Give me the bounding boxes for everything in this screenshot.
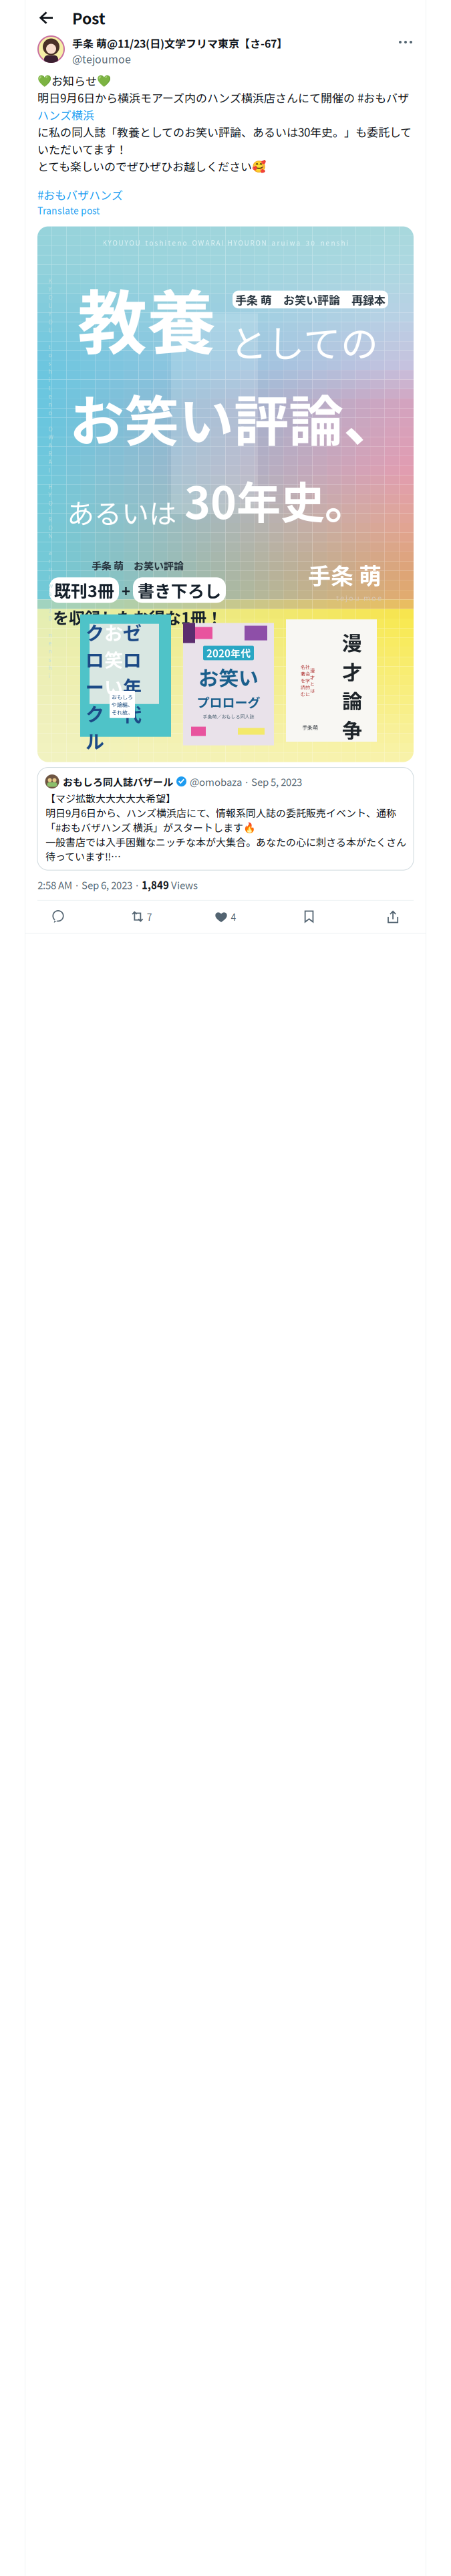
staticText: Post: [72, 7, 106, 29]
staticText: おもしろ同人誌バザール: [63, 774, 173, 789]
staticText: 【マジ拡散大大大大大希望】: [45, 791, 176, 805]
staticText: 名 著 を 読 む: [301, 664, 305, 697]
staticText: 明日9月6日から横浜モアーズ内のハンズ横浜店さんにて開催の #おもバザ: [37, 89, 409, 106]
staticText: 手条萌／おもしろ同人誌: [203, 713, 254, 720]
button[interactable]: Share: [372, 901, 414, 932]
staticText: 手条 萌 お笑い評論: [92, 558, 184, 573]
staticText: に私の同人誌「教養としてのお笑い評論、あるいは30年史。」も委託して: [37, 124, 412, 140]
staticText: 手条 萌: [308, 558, 382, 591]
staticText: としての: [230, 314, 378, 368]
staticText: 手条萌: [302, 723, 318, 731]
staticText: K Y O U Y O U t o s h i t e n o O W A R …: [48, 277, 53, 680]
staticText: 「#おもバザハンズ 横浜」がスタートします🔥: [45, 820, 256, 834]
staticText: ハンズ横浜: [37, 106, 94, 123]
staticText: おもしろ や論編、 それ故。: [112, 693, 133, 716]
staticText: 1,849: [142, 878, 169, 892]
staticText: 手条 萌@11/23(日)文学フリマ東京【さ-67】: [72, 35, 287, 51]
staticText: 漫 才 論 争: [342, 627, 362, 744]
staticText: 一般書店では入手困難なニッチな本が大集合。あなたの心に刺さる本がたくさん: [45, 834, 406, 849]
staticText: @tejoumoe: [72, 51, 131, 66]
staticText: 30年史。: [184, 468, 369, 532]
staticText: Translate post: [37, 203, 100, 217]
staticText: お笑い: [198, 662, 259, 691]
staticText: +: [122, 579, 130, 601]
staticText: 明日9月6日から、ハンズ横浜店にて、情報系同人誌の委託販売イベント、通称: [45, 805, 396, 820]
button[interactable]: Translate post: [37, 203, 100, 217]
staticText: 社 会 学 的 に: [305, 664, 310, 697]
staticText: Views: [169, 878, 198, 892]
staticText: 漫 才 と は: [310, 667, 315, 694]
staticText: ク ロ ー ク ル: [86, 618, 104, 754]
staticText: K Y O U Y O U t o s h i t e n o O W A R …: [103, 238, 348, 248]
staticText: あるいは: [67, 492, 176, 532]
staticText: 既刊3冊: [54, 578, 114, 602]
staticText: ゼ ロ 年 代: [123, 618, 142, 727]
staticText: 💚お知らせ💚: [37, 72, 111, 89]
staticText: とても楽しいのでぜひぜひお越しください🥰: [37, 158, 266, 174]
button[interactable]: Back: [35, 6, 57, 29]
button[interactable]: More options: [398, 35, 414, 49]
button[interactable]: Bookmark: [289, 901, 330, 932]
staticText: t e j o u m o e: [336, 592, 382, 603]
staticText: 4: [231, 910, 236, 924]
staticText: 2:58 AM · Sep 6, 2023 ·: [37, 878, 142, 892]
button[interactable]: Like: [205, 901, 246, 932]
button[interactable]: おもしろ同人誌バザール: [37, 767, 414, 870]
staticText: 2020年代: [206, 646, 251, 660]
staticText: 待っています‼…: [45, 849, 121, 863]
staticText: 手条 萌 お笑い評論 再録本: [235, 291, 386, 308]
staticText: #おもバザハンズ: [37, 186, 123, 203]
staticText: @omobaza · Sep 5, 2023: [190, 774, 302, 789]
staticText: 7: [147, 910, 152, 924]
staticText: いただいてます！: [37, 141, 127, 157]
staticText: を収録したお得な1冊！: [53, 606, 222, 629]
staticText: お 笑 い: [104, 618, 123, 700]
staticText: 教養: [78, 268, 216, 368]
staticText: 書き下ろし: [138, 578, 221, 602]
button[interactable]: Reply: [37, 901, 79, 932]
staticText: お笑い評論、: [69, 378, 398, 457]
staticText: プロローグ: [197, 693, 260, 711]
button[interactable]: Repost: [121, 901, 162, 932]
